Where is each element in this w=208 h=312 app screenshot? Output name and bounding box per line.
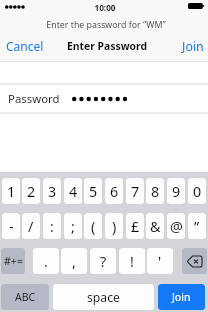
button[interactable]: Delete [182,248,207,274]
button[interactable]: ? [90,248,116,274]
staticText: ( [91,217,96,236]
staticText: & [150,217,161,236]
button[interactable]: , [61,248,87,274]
button[interactable]: @ [167,213,185,239]
staticText: Join [172,290,191,304]
staticText: ! [130,252,134,271]
staticText: ) [112,217,117,236]
button[interactable]: 7 [126,178,144,204]
staticText: 1 [7,182,16,201]
staticText: - [9,217,14,236]
button[interactable]: & [146,213,164,239]
staticText: ' [158,252,162,271]
staticText: Cancel [6,38,44,54]
button[interactable]: space [53,284,154,310]
staticText: ABC [15,290,36,304]
staticText: Enter Password [3,39,208,53]
button[interactable]: . [33,248,59,274]
button[interactable]: 6 [105,178,123,204]
staticText: ; [71,217,75,236]
staticText: ? [100,252,107,271]
button[interactable]: £ [126,213,144,239]
button[interactable]: 0 [188,178,206,204]
staticText: 0 [193,182,202,201]
button[interactable]: Cancel [0,34,48,58]
staticText: space [87,289,120,306]
staticText: / [28,217,34,236]
staticText: ” [194,217,200,236]
button[interactable]: 4 [64,178,82,204]
staticText: : [50,217,54,236]
button[interactable]: 9 [167,178,185,204]
staticText: 2 [27,182,36,201]
staticText: Join [182,38,204,55]
button[interactable]: Password [0,85,208,113]
staticText: . [44,252,48,271]
staticText: 7 [131,182,140,201]
staticText: Password [8,91,60,107]
button[interactable]: 3 [43,178,61,204]
staticText: 10:00 [1,2,208,13]
button[interactable]: #+= [1,248,25,274]
button[interactable]: ! [119,248,145,274]
staticText: 4 [69,182,78,201]
staticText: @ [170,217,183,236]
button[interactable]: Join [175,34,208,58]
button[interactable]: ABC [1,284,49,310]
button[interactable]: - [2,213,20,239]
staticText: 8 [151,182,160,201]
button[interactable]: 1 [2,178,20,204]
button[interactable]: 8 [146,178,164,204]
button[interactable]: ” [188,213,206,239]
button[interactable]: ; [64,213,82,239]
button[interactable]: ) [105,213,123,239]
staticText: 9 [172,182,181,201]
staticText: #+= [4,254,23,268]
button[interactable]: / [22,213,40,239]
staticText: 5 [89,182,98,201]
staticText: 3 [48,182,57,201]
button[interactable]: : [43,213,61,239]
staticText: £ [131,217,140,236]
staticText: 6 [110,182,119,201]
staticText: , [72,252,76,271]
button[interactable]: ( [84,213,102,239]
button[interactable]: Join [158,284,205,310]
button[interactable]: 5 [84,178,102,204]
staticText: Enter the password for “WM” [2,19,208,31]
button[interactable]: ' [147,248,173,274]
button[interactable]: 2 [22,178,40,204]
